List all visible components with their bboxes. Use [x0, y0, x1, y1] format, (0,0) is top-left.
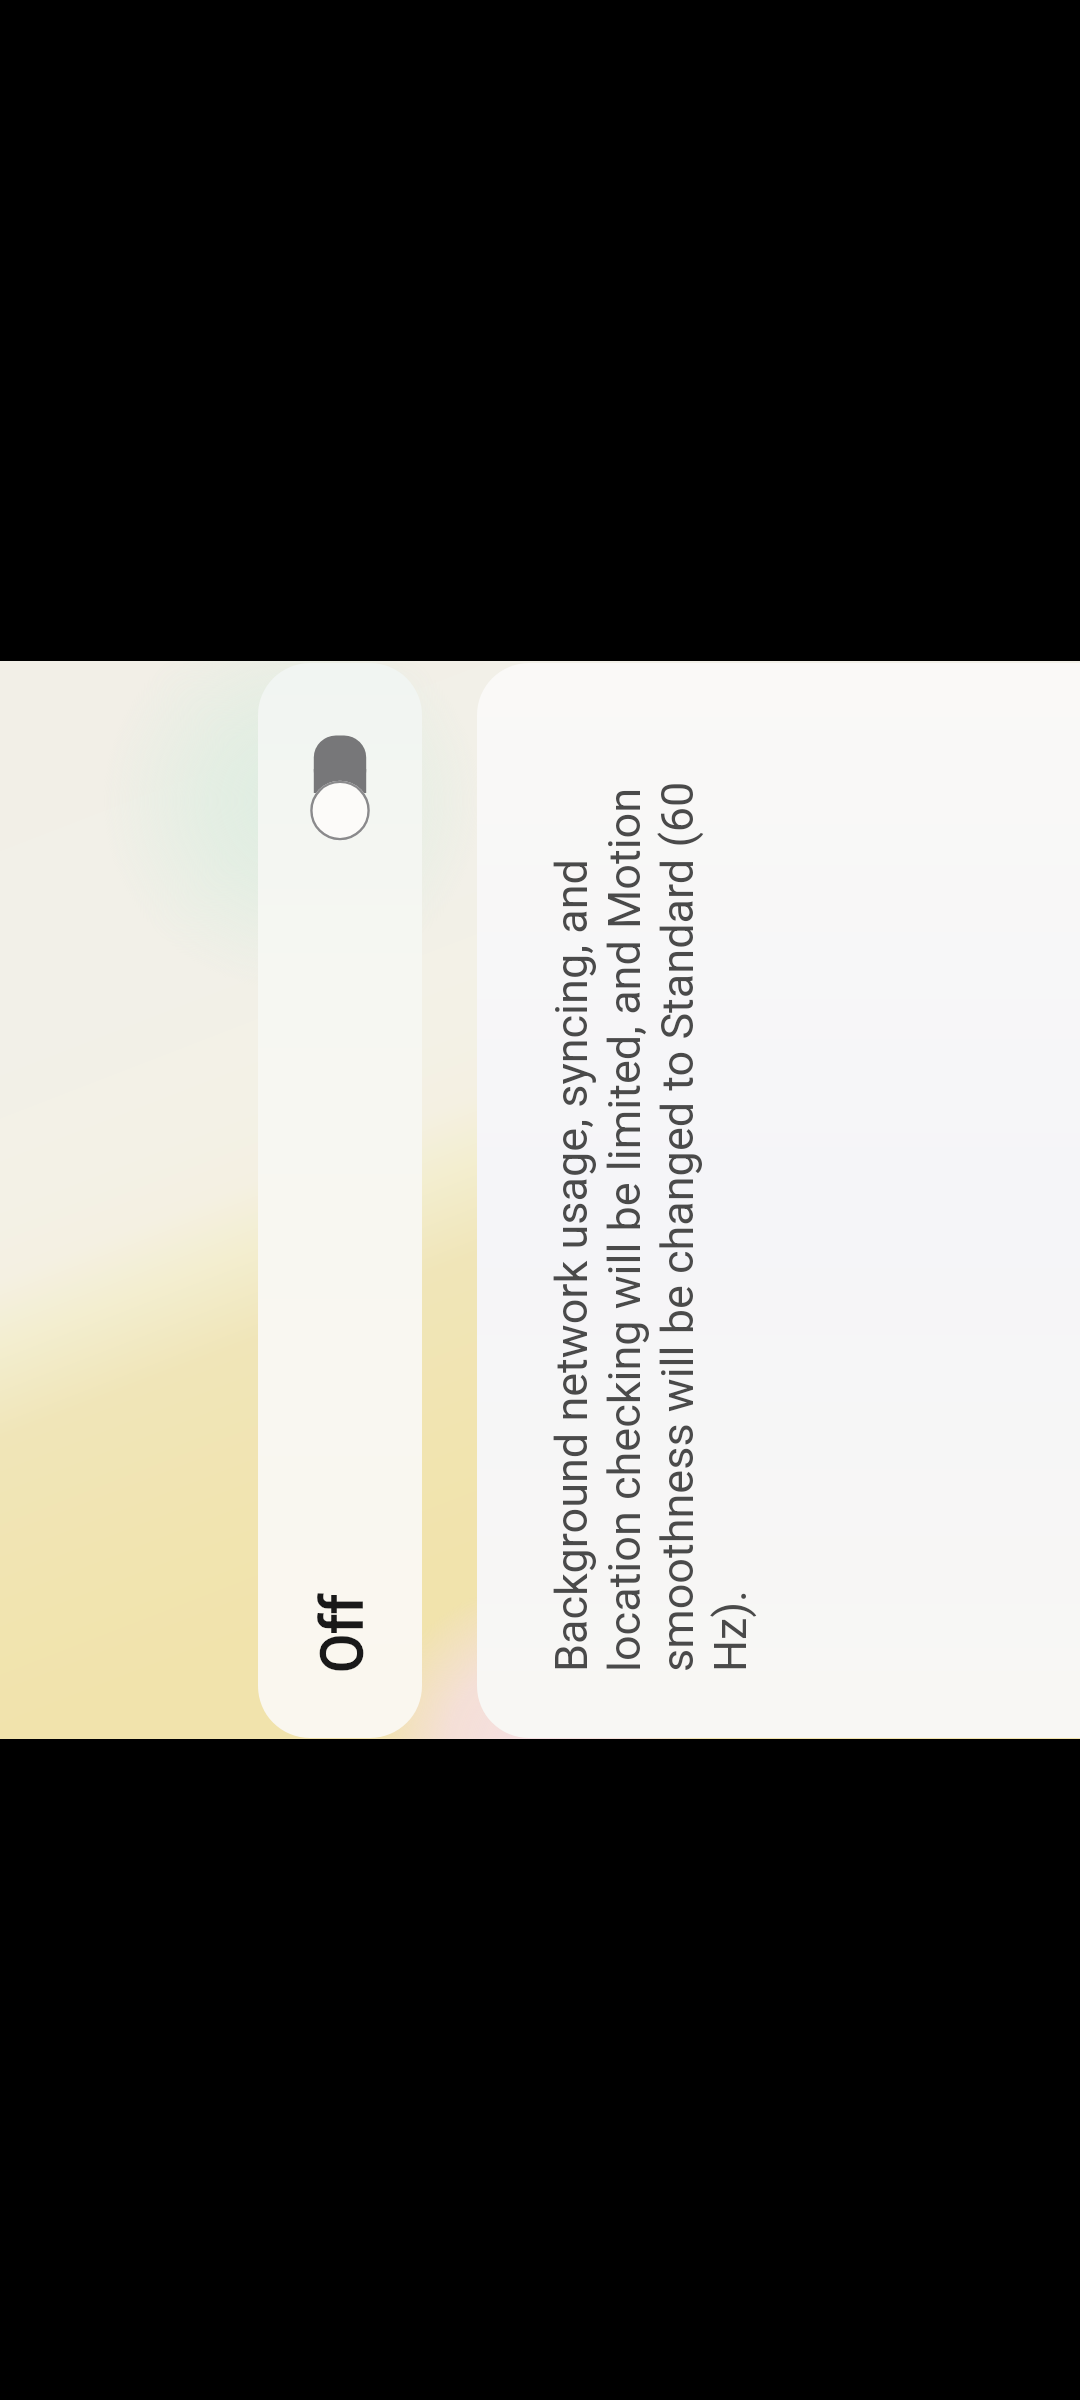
button[interactable]: Power saving, off: [307, 728, 373, 848]
button[interactable]: Off: [258, 663, 422, 1738]
staticText: Background network usage, syncing, and l…: [545, 722, 757, 1672]
staticText: Off: [309, 1594, 376, 1673]
